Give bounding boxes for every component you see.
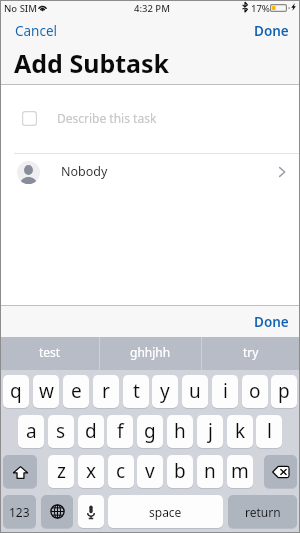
button[interactable]: d [78, 415, 104, 448]
staticText: b [174, 458, 186, 484]
button[interactable]: i [212, 375, 238, 408]
staticText: return [245, 504, 281, 520]
button[interactable]: Dictation [78, 495, 104, 528]
staticText: m [231, 458, 249, 484]
staticText: w [39, 378, 54, 404]
staticText: try [243, 344, 259, 360]
button[interactable]: b [167, 455, 193, 488]
button[interactable]: o [242, 375, 268, 408]
staticText: u [189, 378, 201, 404]
button[interactable]: p [271, 375, 297, 408]
staticText: r [102, 378, 110, 404]
button[interactable]: space [108, 495, 223, 528]
button[interactable]: l [256, 415, 282, 448]
staticText: space [149, 504, 182, 520]
button[interactable]: test [0, 337, 99, 370]
staticText: f [117, 418, 124, 444]
staticText: i [223, 378, 228, 404]
button[interactable]: z [48, 455, 74, 488]
button[interactable]: return [228, 495, 297, 528]
button[interactable]: try [202, 337, 300, 370]
button[interactable]: m [227, 455, 253, 488]
button[interactable]: Delete [264, 455, 297, 488]
staticText: p [278, 378, 290, 404]
staticText: test [39, 344, 61, 360]
button[interactable]: k [227, 415, 253, 448]
button[interactable]: c [108, 455, 134, 488]
staticText: ghhjhh [130, 344, 171, 360]
staticText: Add Subtask [14, 46, 170, 80]
button[interactable]: r [93, 375, 119, 408]
staticText: 123 [9, 504, 30, 520]
button[interactable]: Shift [3, 455, 37, 488]
staticText: l [267, 418, 272, 444]
staticText: Done [254, 22, 289, 40]
button[interactable]: x [78, 455, 104, 488]
button[interactable]: j [197, 415, 223, 448]
button[interactable]: v [137, 455, 163, 488]
staticText: Nobody [61, 163, 108, 180]
button[interactable]: Done [244, 18, 300, 44]
staticText: q [10, 378, 22, 404]
staticText: o [249, 378, 261, 404]
button[interactable]: g [137, 415, 163, 448]
button[interactable]: 123 [3, 495, 36, 528]
button[interactable]: Next keyboard [41, 495, 73, 528]
staticText: t [133, 378, 140, 404]
staticText: 4:32 PM [134, 2, 170, 15]
button[interactable]: Cancel [0, 18, 68, 44]
staticText: v [145, 458, 155, 484]
staticText: No SIM [4, 2, 37, 15]
staticText: g [144, 418, 156, 444]
button[interactable]: t [123, 375, 149, 408]
staticText: d [85, 418, 97, 444]
staticText: a [26, 418, 37, 444]
staticText: n [204, 458, 216, 484]
staticText: y [160, 378, 170, 404]
button[interactable]: Mark complete [0, 97, 300, 132]
button[interactable]: n [197, 455, 223, 488]
other: Mark complete [22, 111, 37, 126]
staticText: Describe this task [57, 110, 157, 126]
staticText: Cancel [15, 22, 58, 40]
button[interactable]: Nobody [0, 155, 300, 189]
staticText: j [208, 418, 213, 444]
staticText: h [174, 418, 186, 444]
staticText: z [57, 458, 66, 484]
button[interactable]: e [63, 375, 89, 408]
staticText: Done [254, 313, 289, 331]
staticText: s [56, 418, 66, 444]
staticText: e [71, 378, 82, 404]
other: Choose assignee [279, 167, 286, 177]
button[interactable]: u [182, 375, 208, 408]
button[interactable]: w [33, 375, 59, 408]
button[interactable]: Done [240, 306, 300, 337]
staticText: x [86, 458, 97, 484]
button[interactable]: s [48, 415, 74, 448]
staticText: k [235, 418, 246, 444]
button[interactable]: y [152, 375, 178, 408]
button[interactable]: ghhjhh [100, 337, 201, 370]
staticText: c [116, 458, 126, 484]
button[interactable]: a [18, 415, 44, 448]
button[interactable]: q [3, 375, 29, 408]
button[interactable]: h [167, 415, 193, 448]
staticText: 17% [251, 2, 270, 15]
button[interactable]: f [107, 415, 133, 448]
